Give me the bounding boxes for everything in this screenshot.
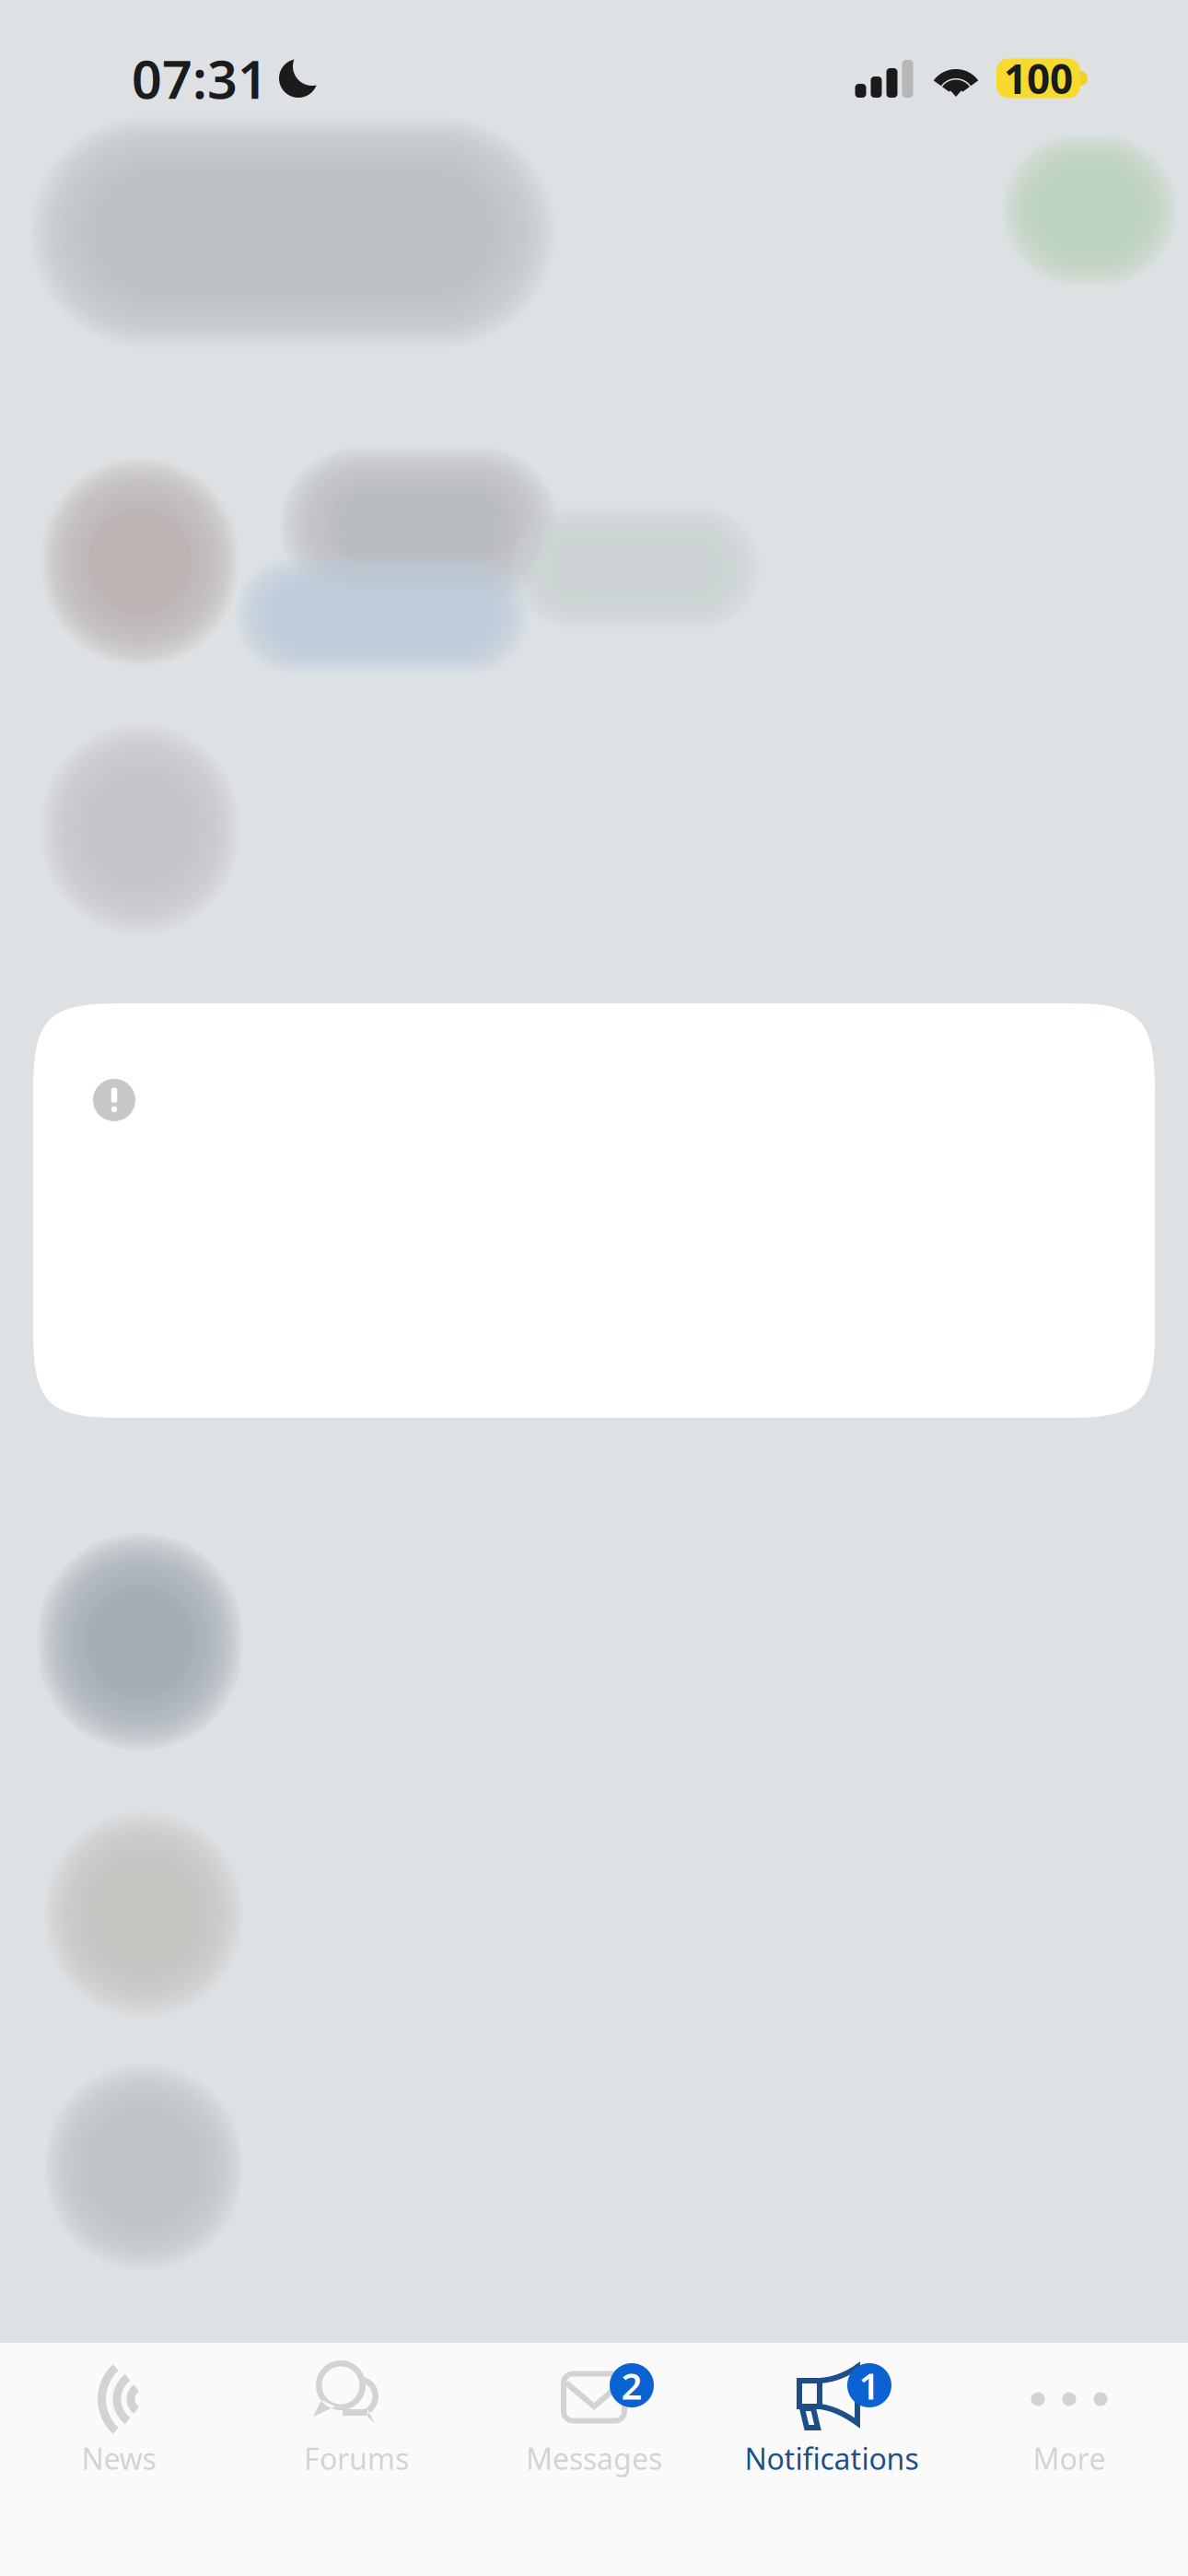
button[interactable]: Forums <box>238 2343 475 2484</box>
staticText: 07:31 <box>132 43 268 113</box>
staticText: 2 <box>621 2361 642 2410</box>
staticText: Forums <box>304 2439 409 2478</box>
button[interactable]: 2 <box>475 2343 713 2484</box>
button[interactable]: News <box>0 2343 238 2484</box>
button[interactable]: More <box>950 2343 1188 2484</box>
staticText: More <box>1033 2439 1106 2478</box>
staticText: 1 <box>859 2361 880 2410</box>
staticText: Notifications <box>745 2439 919 2478</box>
staticText: Messages <box>526 2439 662 2478</box>
staticText: 100 <box>1004 51 1073 105</box>
button[interactable]: 1 <box>713 2343 950 2484</box>
staticText: News <box>82 2439 156 2478</box>
button[interactable] <box>33 1003 1155 1418</box>
